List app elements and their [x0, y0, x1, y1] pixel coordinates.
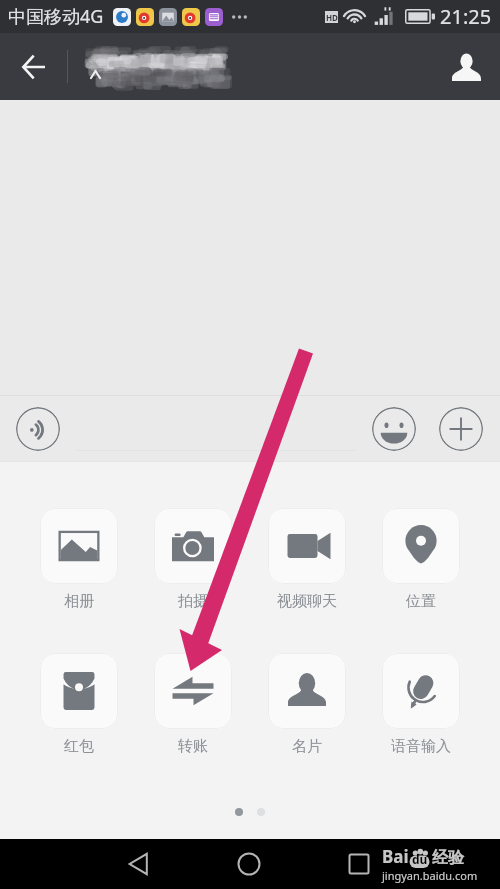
button[interactable]: Emoji	[372, 407, 416, 451]
staticText: 转账	[154, 737, 232, 756]
button[interactable]: 语音输入	[382, 653, 460, 756]
button[interactable]: Recent apps	[304, 839, 414, 889]
staticText: 相册	[40, 592, 118, 611]
staticText: 经验	[432, 848, 464, 868]
staticText: 语音输入	[382, 737, 460, 756]
button[interactable]: 拍摄	[154, 508, 232, 611]
staticText: 拍摄	[154, 592, 232, 611]
staticText: 位置	[382, 592, 460, 611]
staticText: jingyan.baidu.com	[382, 868, 478, 883]
staticText: 名片	[268, 737, 346, 756]
staticText: 21:25	[440, 3, 492, 30]
button[interactable]: Voice message	[16, 407, 60, 451]
button[interactable]: 位置	[382, 508, 460, 611]
staticText: Bai	[382, 845, 409, 868]
button[interactable]: 视频聊天	[268, 508, 346, 611]
staticText: du	[412, 851, 428, 867]
button[interactable]: Home	[194, 839, 304, 889]
button[interactable]: Back	[0, 33, 67, 100]
button[interactable]: 相册	[40, 508, 118, 611]
button[interactable]: Back	[84, 839, 194, 889]
staticText: 视频聊天	[268, 592, 346, 611]
button[interactable]: 红包	[40, 653, 118, 756]
button[interactable]: 名片	[268, 653, 346, 756]
staticText: 中国移动4G	[8, 4, 104, 29]
staticText: HD	[326, 12, 338, 23]
button[interactable]: Contact info	[433, 33, 500, 100]
staticText: 红包	[40, 737, 118, 756]
button[interactable]: 转账	[154, 653, 232, 756]
button[interactable]: More functions	[439, 407, 483, 451]
